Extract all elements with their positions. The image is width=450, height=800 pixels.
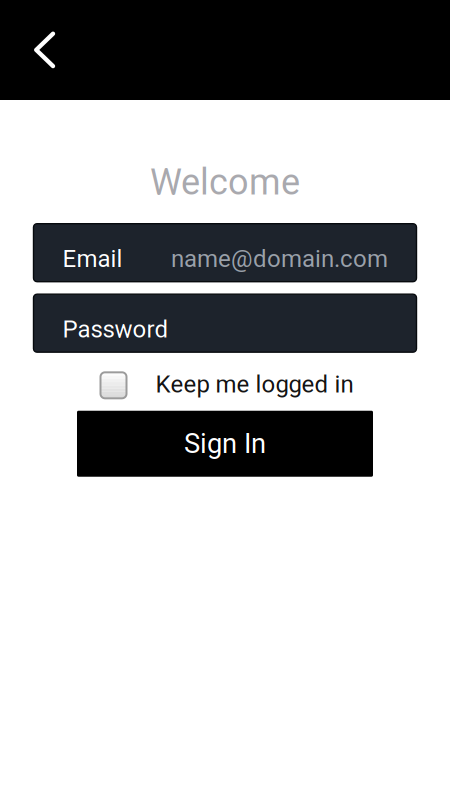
staticText: name@domain.com [171,245,388,273]
button[interactable]: Keep me logged in [100,370,353,398]
staticText: Password [62,315,168,343]
button[interactable]: Back [17,22,73,78]
staticText: Sign In [184,428,266,460]
staticText: Keep me logged in [155,370,353,398]
staticText: Welcome [150,161,300,203]
staticText: Email [62,245,122,273]
button[interactable]: Sign In [77,411,373,477]
